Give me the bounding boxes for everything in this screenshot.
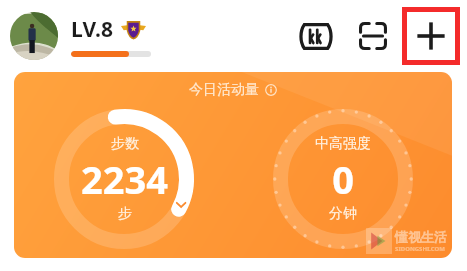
button[interactable]: Scan xyxy=(350,13,396,59)
staticText: 步 xyxy=(118,205,132,223)
staticText: 分钟 xyxy=(329,205,357,223)
staticText: 懂视生活 xyxy=(395,229,447,245)
button[interactable]: Profile photo xyxy=(10,12,58,60)
staticText: 今日活动量 xyxy=(189,81,259,99)
button[interactable]: LV.8 xyxy=(71,15,151,57)
staticText: 步数 xyxy=(111,135,139,153)
staticText: LV.8 xyxy=(71,15,113,44)
staticText: 中高强度 xyxy=(315,135,371,153)
staticText: 0 xyxy=(332,153,354,205)
button[interactable]: 今日活动量 xyxy=(14,72,452,258)
button[interactable]: KK coupon xyxy=(292,12,340,60)
staticText: SIDONGSHI.COM xyxy=(395,245,445,253)
staticText: 2234 xyxy=(81,153,168,205)
button[interactable]: Add xyxy=(402,7,460,65)
